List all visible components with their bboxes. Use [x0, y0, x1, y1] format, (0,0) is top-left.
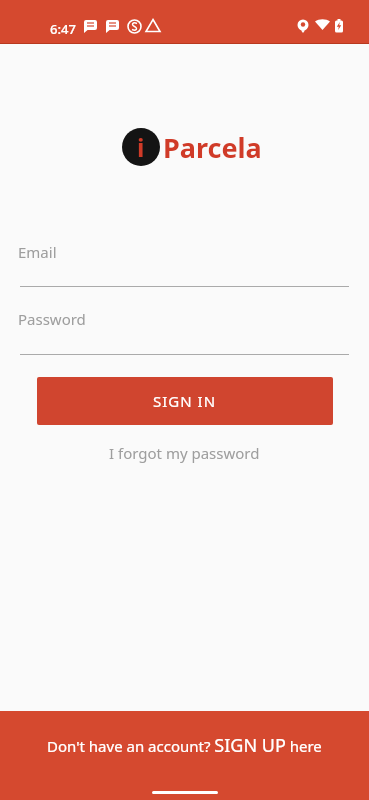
- button[interactable]: Email: [18, 238, 349, 287]
- button[interactable]: SIGN IN: [37, 377, 333, 425]
- button[interactable]: Don't have an account? SIGN UP here: [0, 711, 369, 800]
- staticText: SIGN IN: [153, 391, 217, 411]
- button[interactable]: Password: [18, 306, 349, 355]
- staticText: Email: [18, 242, 57, 262]
- staticText: Parcela: [163, 129, 262, 166]
- button[interactable]: I forgot my password: [109, 443, 260, 463]
- staticText: i: [137, 130, 145, 164]
- staticText: Don't have an account? SIGN UP here: [47, 733, 322, 758]
- staticText: 6:47: [50, 20, 76, 38]
- staticText: Password: [18, 309, 86, 329]
